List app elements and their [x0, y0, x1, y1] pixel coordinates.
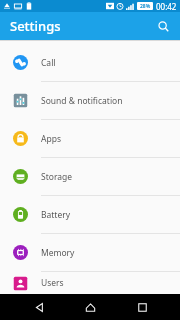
button[interactable]: Call — [0, 44, 180, 81]
button[interactable]: Search — [152, 15, 174, 37]
staticText: Call — [41, 57, 56, 69]
staticText: Storage — [41, 171, 73, 183]
staticText: Memory — [41, 247, 75, 259]
button[interactable]: Battery — [0, 196, 180, 233]
staticText: Sound & notification — [41, 95, 123, 107]
button[interactable]: Recent apps — [129, 294, 155, 320]
button[interactable]: Home — [77, 294, 103, 320]
staticText: Battery — [41, 209, 71, 221]
staticText: Apps — [41, 133, 61, 145]
button[interactable]: Users — [0, 272, 180, 294]
staticText: 00:42 — [156, 1, 177, 12]
button[interactable]: Back — [26, 294, 52, 320]
button[interactable]: Sound & notification — [0, 82, 180, 119]
button[interactable]: Storage — [0, 158, 180, 195]
staticText: Users — [41, 277, 64, 289]
staticText: Settings — [10, 17, 61, 35]
button[interactable]: Memory — [0, 234, 180, 271]
button[interactable]: Apps — [0, 120, 180, 157]
staticText: 28% — [140, 3, 151, 10]
